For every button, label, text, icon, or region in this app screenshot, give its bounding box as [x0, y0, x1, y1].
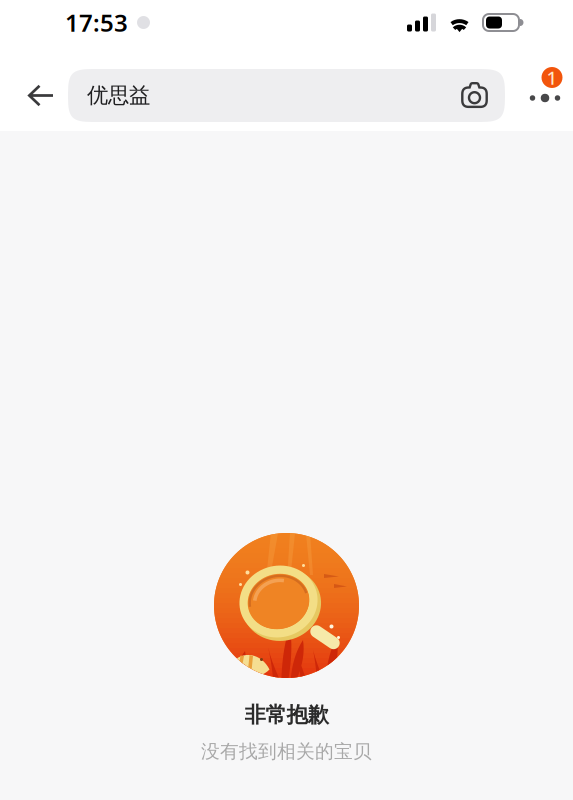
staticText: 优思益	[87, 82, 150, 109]
staticText: 17:53	[65, 7, 128, 38]
staticText: 1	[546, 65, 557, 90]
button[interactable]: More options	[521, 71, 569, 119]
button[interactable]: Back	[15, 69, 67, 121]
button[interactable]: 优思益	[68, 69, 505, 122]
staticText: 没有找到相关的宝贝	[201, 740, 372, 763]
staticText: 非常抱歉	[244, 702, 328, 728]
